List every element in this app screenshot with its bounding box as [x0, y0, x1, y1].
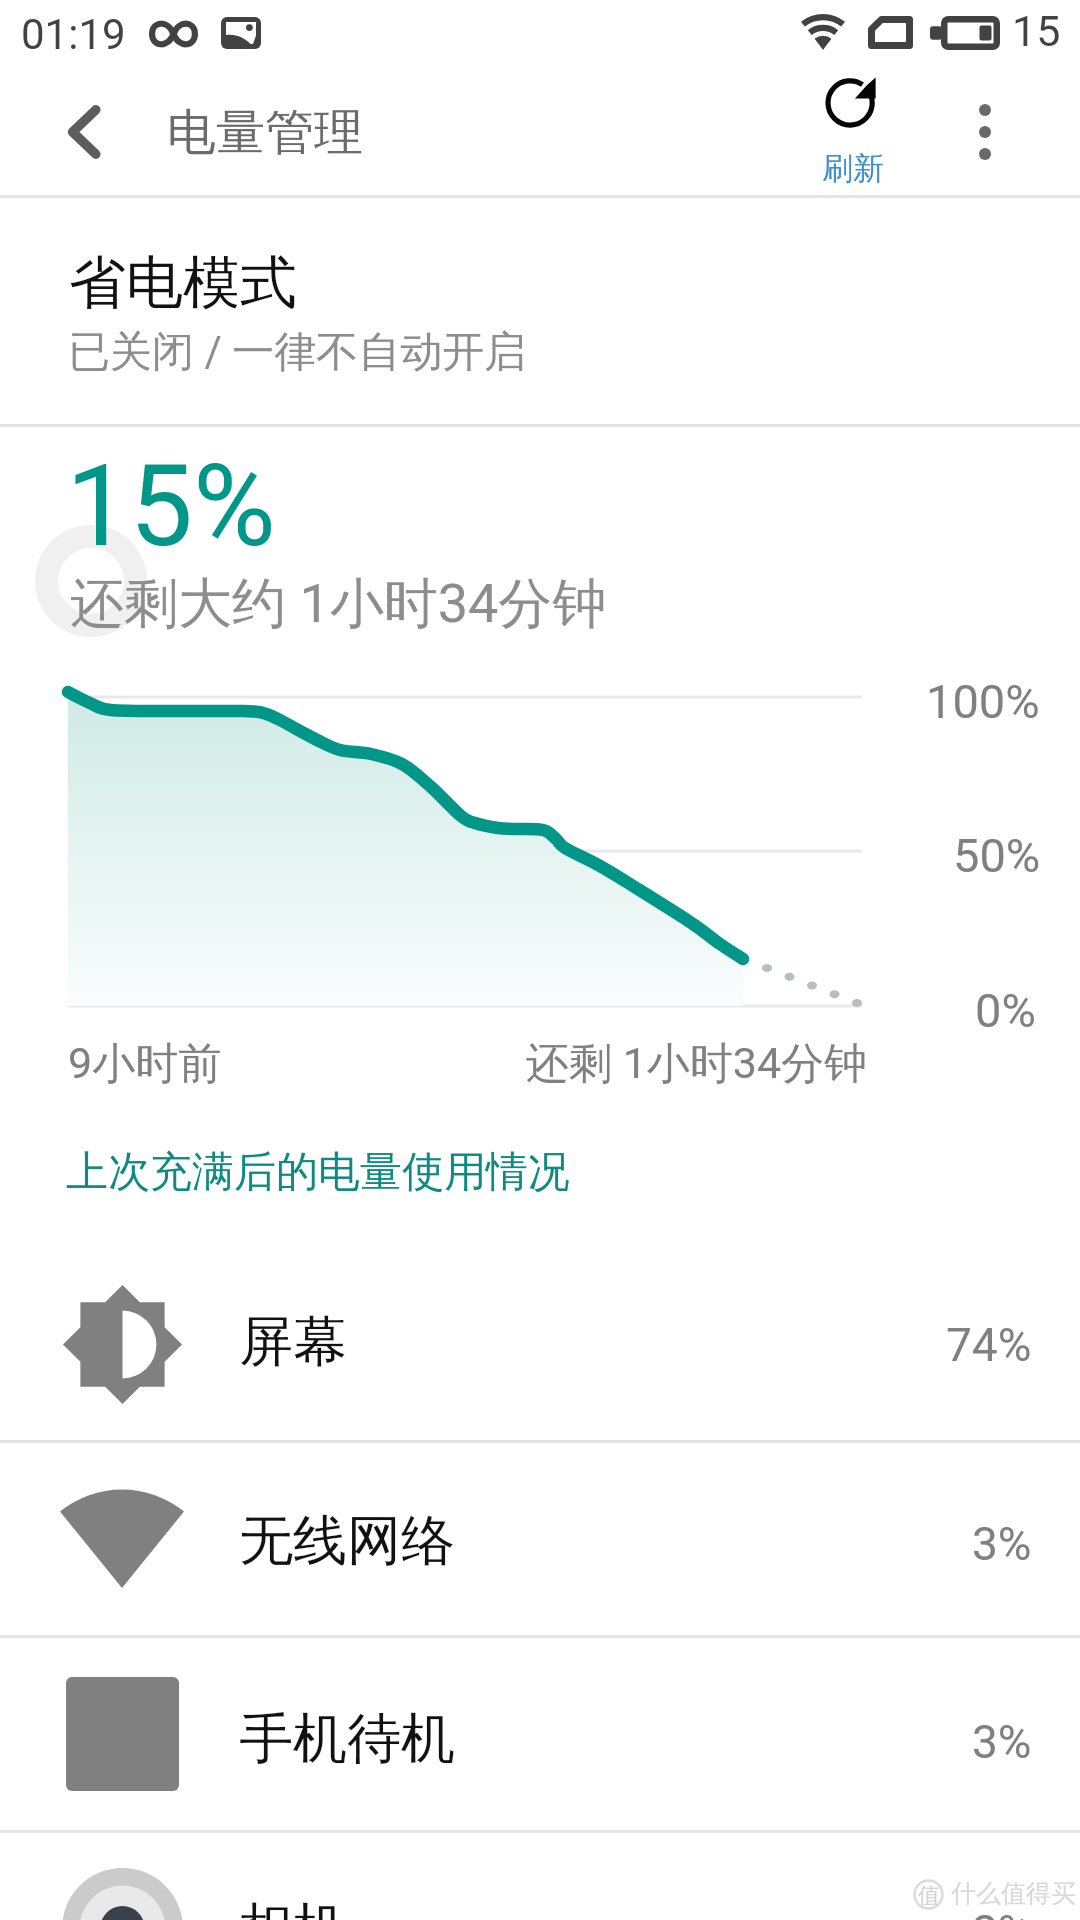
staticText: 省电模式 [69, 247, 297, 319]
staticText: 3% [972, 1517, 1032, 1571]
staticText: 屏幕 [239, 1308, 347, 1376]
button[interactable]: 手机待机 [0, 1634, 1080, 1831]
button[interactable]: 省电模式 [0, 197, 1080, 423]
staticText: 15% [66, 440, 276, 572]
staticText: 100% [926, 674, 1040, 729]
staticText: 3% [972, 1715, 1032, 1769]
staticText: 刷新 [822, 149, 884, 188]
staticText: 手机待机 [239, 1705, 455, 1773]
button[interactable]: 相机 [0, 1833, 1080, 1920]
staticText: 9小时前 [68, 1037, 222, 1091]
staticText: 什么值得买 [951, 1878, 1076, 1909]
staticText: 还剩大约 1小时34分钟 [70, 570, 607, 638]
button[interactable]: 屏幕 [0, 1237, 1080, 1434]
staticText: 相机 [239, 1895, 347, 1920]
button[interactable]: More options [925, 72, 1045, 192]
staticText: 2% [972, 1905, 1032, 1920]
staticText: 74% [946, 1318, 1032, 1372]
staticText: 0% [975, 983, 1036, 1038]
staticText: 上次充满后的电量使用情况 [66, 1146, 570, 1199]
staticText: 15 [1012, 6, 1061, 56]
button[interactable]: 无线网络 [0, 1436, 1080, 1633]
staticText: 值 [918, 1882, 940, 1910]
staticText: 无线网络 [239, 1507, 455, 1575]
button[interactable]: Back [25, 72, 145, 192]
staticText: 已关闭 / 一律不自动开启 [68, 326, 527, 379]
staticText: 还剩 1小时34分钟 [526, 1037, 868, 1091]
staticText: 电量管理 [167, 102, 363, 164]
staticText: 01:19 [21, 10, 126, 59]
staticText: 50% [953, 828, 1041, 883]
button[interactable]: 刷新 [778, 68, 924, 194]
